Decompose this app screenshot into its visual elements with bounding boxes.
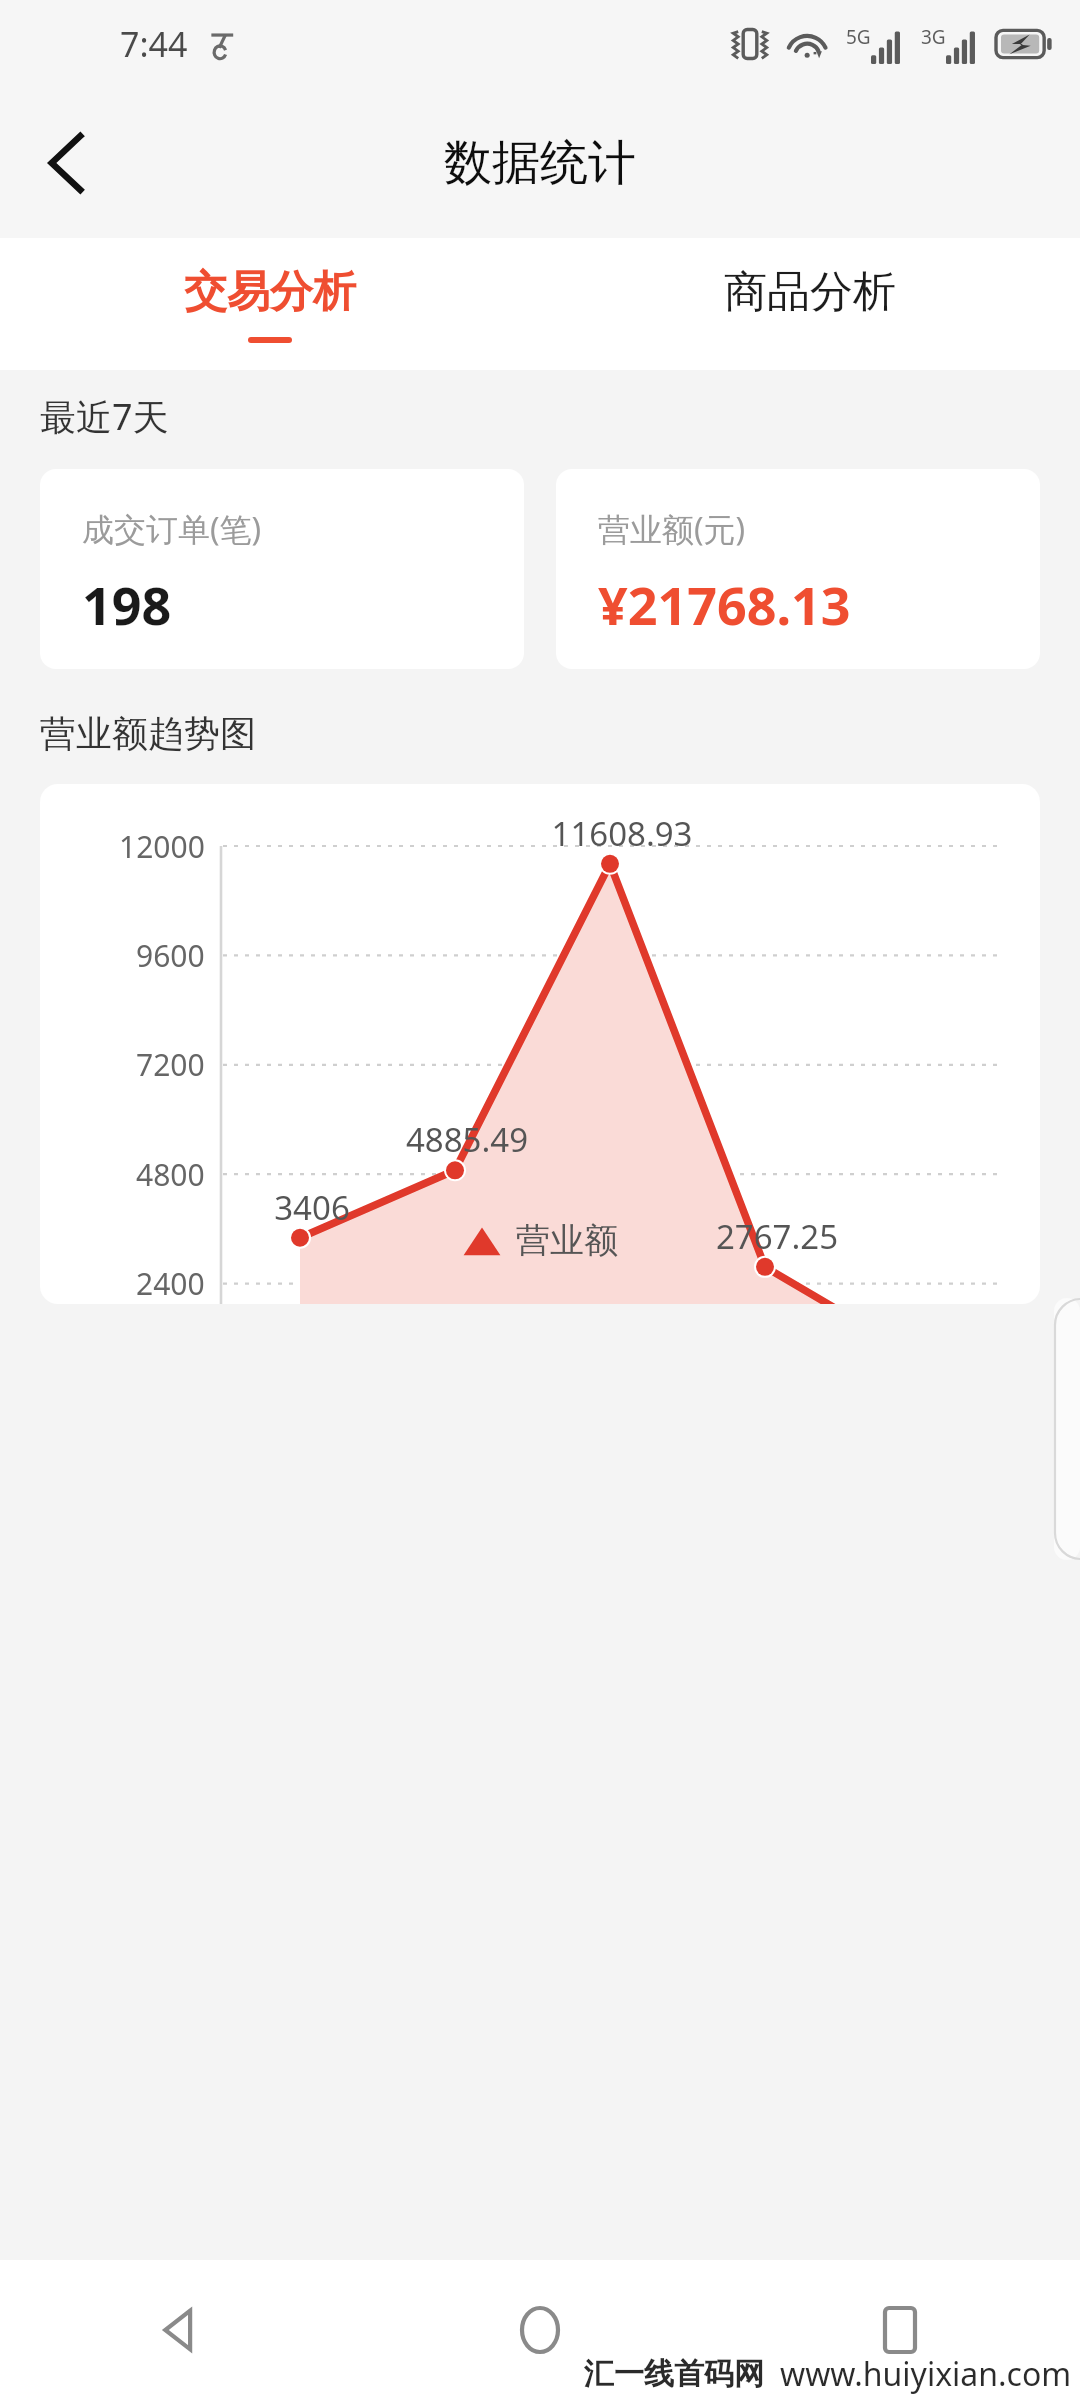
button[interactable]: Open drawer bbox=[1054, 1298, 1080, 1560]
staticText: 营业额 bbox=[516, 1219, 618, 1262]
staticText: 3G bbox=[921, 24, 946, 50]
button[interactable]: Back bbox=[0, 2260, 360, 2400]
button[interactable]: Home bbox=[360, 2260, 720, 2400]
staticText: www.huiyixian.com bbox=[780, 2352, 1072, 2396]
staticText: 汇一线首码网 bbox=[584, 2355, 764, 2393]
staticText: 198 bbox=[82, 569, 172, 640]
button[interactable]: Back bbox=[20, 117, 112, 209]
button[interactable]: 成交订单(笔) bbox=[40, 469, 524, 669]
button[interactable]: 交易分析 bbox=[0, 238, 540, 370]
staticText: 成交订单(笔) bbox=[82, 507, 262, 551]
staticText: 数据统计 bbox=[444, 133, 636, 193]
staticText: 最近7天 bbox=[40, 392, 169, 441]
staticText: 营业额趋势图 bbox=[40, 711, 256, 756]
staticText: 营业额(元) bbox=[598, 507, 746, 551]
staticText: 5G bbox=[846, 24, 871, 50]
button[interactable]: 营业额(元) bbox=[556, 469, 1040, 669]
button[interactable]: 营业额 bbox=[462, 1219, 618, 1262]
button[interactable]: 商品分析 bbox=[540, 238, 1080, 370]
staticText: 商品分析 bbox=[724, 265, 896, 319]
button[interactable]: Recent apps bbox=[720, 2260, 1080, 2400]
staticText: 7:44 bbox=[120, 21, 188, 67]
staticText: ¥21768.13 bbox=[598, 569, 851, 640]
staticText: 交易分析 bbox=[184, 265, 356, 319]
